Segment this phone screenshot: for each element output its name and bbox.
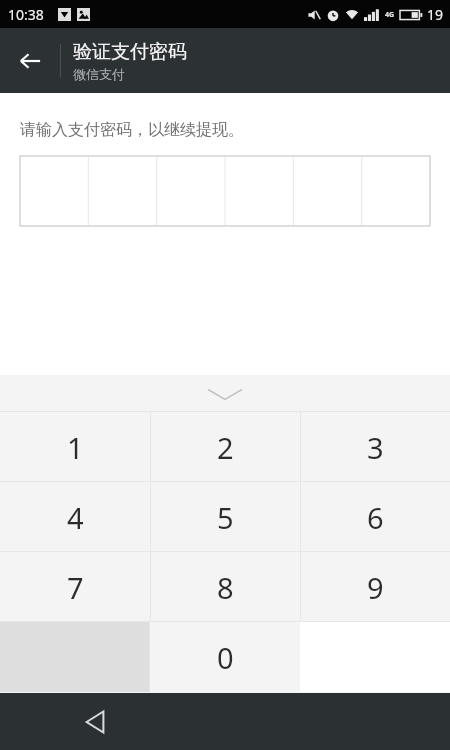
- staticText: 7: [67, 568, 84, 607]
- staticText: 4G: [385, 10, 395, 20]
- button[interactable]: 8: [151, 552, 300, 622]
- staticText: 8: [217, 568, 234, 607]
- staticText: 1: [67, 428, 84, 467]
- staticText: 微信支付: [73, 66, 125, 82]
- button[interactable]: 7: [0, 552, 150, 622]
- button[interactable]: 3: [301, 412, 450, 482]
- button[interactable]: Hide keyboard: [0, 375, 450, 412]
- staticText: 验证支付密码: [73, 40, 187, 64]
- staticText: 5: [217, 498, 234, 537]
- button[interactable]: 1: [0, 412, 150, 482]
- staticText: 10:38: [8, 5, 44, 24]
- button[interactable]: 2: [151, 412, 300, 482]
- button[interactable]: Back: [72, 699, 118, 745]
- button[interactable]: 6: [301, 482, 450, 552]
- staticText: 4: [67, 498, 84, 537]
- staticText: 19: [427, 5, 444, 24]
- staticText: 9: [367, 568, 384, 607]
- staticText: 0: [217, 638, 234, 677]
- button[interactable]: 9: [301, 552, 450, 622]
- button[interactable]: 5: [151, 482, 300, 552]
- button[interactable]: Back: [0, 28, 60, 93]
- button[interactable]: 4: [0, 482, 150, 552]
- button[interactable]: Password field: [20, 156, 430, 226]
- staticText: 请输入支付密码，以继续提现。: [20, 120, 244, 140]
- button[interactable]: 0: [150, 622, 300, 692]
- staticText: 2: [217, 428, 234, 467]
- staticText: 3: [367, 428, 384, 467]
- staticText: 6: [367, 498, 384, 537]
